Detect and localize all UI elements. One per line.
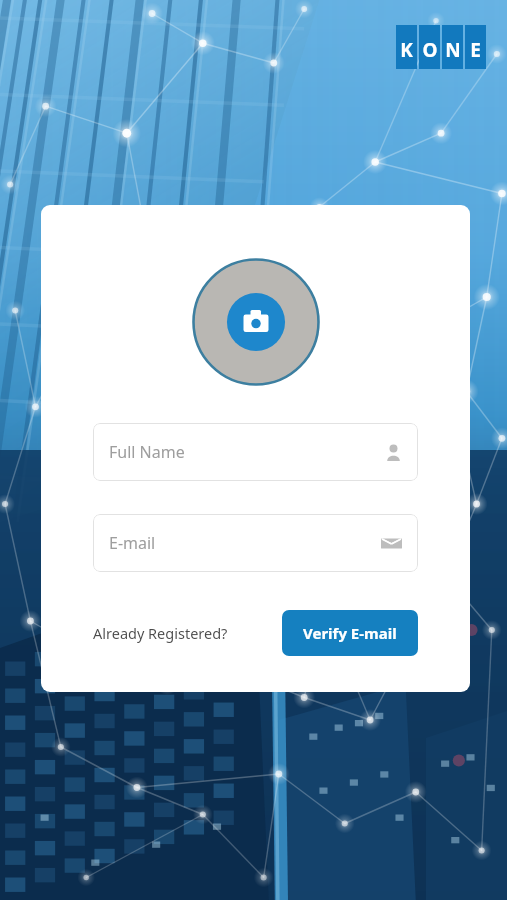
staticText: K — [400, 37, 413, 63]
staticText: O — [422, 37, 438, 63]
button[interactable]: Verify E-mail — [282, 610, 418, 656]
staticText: Already Registered? — [93, 623, 228, 643]
staticText: E — [470, 37, 481, 63]
staticText: Full Name — [109, 441, 385, 463]
button[interactable]: Already Registered? — [93, 617, 228, 649]
button[interactable]: Change profile photo — [192, 258, 320, 386]
staticText: E-mail — [109, 532, 381, 554]
staticText: N — [445, 37, 461, 63]
staticText: Verify E-mail — [303, 623, 397, 643]
button[interactable]: E-mail — [93, 514, 418, 572]
button[interactable]: Full Name — [93, 423, 418, 481]
